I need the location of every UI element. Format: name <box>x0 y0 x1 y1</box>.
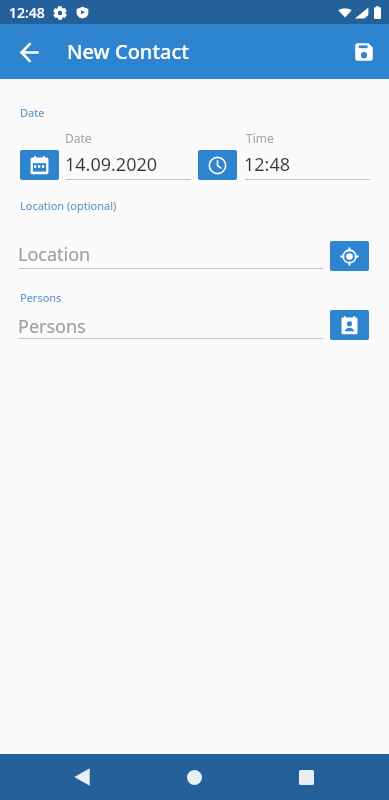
staticText: Persons <box>20 290 62 305</box>
staticText: Date <box>65 130 92 146</box>
button[interactable]: Back <box>8 31 50 73</box>
button[interactable]: Pick persons <box>330 310 369 340</box>
staticText: Persons <box>18 314 86 339</box>
button[interactable]: Pick time <box>198 150 237 180</box>
staticText: Location <box>18 242 91 267</box>
button[interactable]: Pick date <box>20 150 59 180</box>
button[interactable]: Recents <box>283 754 329 800</box>
button[interactable]: Use current location <box>330 241 369 271</box>
button[interactable]: Save <box>343 31 385 73</box>
staticText: 12:48 <box>244 152 291 177</box>
staticText: 12:48 <box>9 3 45 22</box>
button[interactable]: Back <box>59 754 105 800</box>
staticText: Date <box>20 105 45 120</box>
staticText: Location (optional) <box>20 198 117 213</box>
button[interactable]: Home <box>171 754 217 800</box>
staticText: New Contact <box>67 38 189 65</box>
staticText: Time <box>246 130 274 146</box>
staticText: 14.09.2020 <box>65 152 158 177</box>
